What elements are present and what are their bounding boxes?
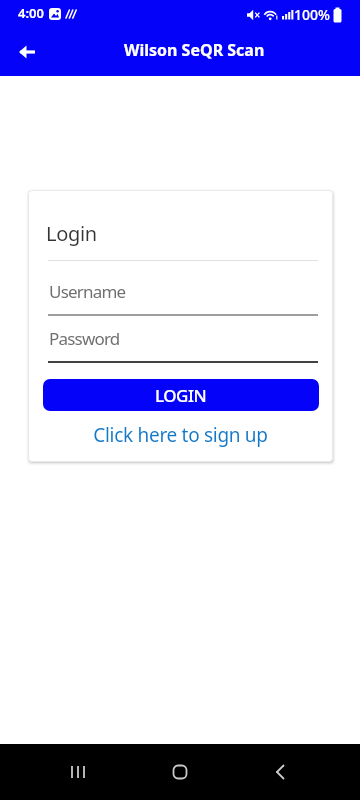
staticText: 4:00: [18, 4, 44, 22]
staticText: Wilson SeQR Scan: [124, 39, 265, 61]
staticText: LOGIN: [155, 384, 207, 407]
staticText: Click here to sign up: [28, 422, 333, 448]
staticText: Username: [49, 280, 126, 303]
staticText: Login: [46, 220, 97, 247]
staticText: Password: [49, 327, 120, 350]
staticText: 100%: [294, 5, 330, 24]
